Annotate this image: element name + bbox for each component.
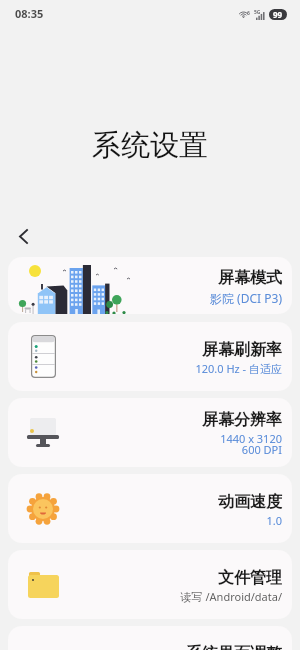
staticText: 动画速度 <box>218 492 282 512</box>
staticText: 屏幕分辨率 <box>202 410 282 430</box>
staticText: 文件管理 <box>218 568 282 588</box>
staticText: 屏幕模式 <box>218 268 282 288</box>
button[interactable]: 屏幕分辨率 <box>8 398 292 467</box>
staticText: 6 <box>247 10 250 17</box>
button[interactable]: Back <box>10 225 36 247</box>
staticText: 系统界面调整 <box>186 644 282 650</box>
button[interactable]: 文件管理 <box>8 550 292 619</box>
staticText: 屏幕刷新率 <box>202 340 282 360</box>
button[interactable]: 屏幕刷新率 <box>8 322 292 391</box>
staticText: 08:35 <box>15 6 44 21</box>
staticText: 5G <box>254 9 261 16</box>
button[interactable]: 屏幕模式 <box>8 257 292 314</box>
staticText: 1440 x 3120 600 DPI <box>220 431 282 458</box>
staticText: 99 <box>273 9 283 20</box>
staticText: 1.0 <box>266 513 282 528</box>
staticText: 影院 (DCI P3) <box>210 290 282 306</box>
staticText: 系统设置 <box>0 127 300 164</box>
staticText: 读写 /Android/data/ <box>180 589 282 604</box>
staticText: 120.0 Hz - 自适应 <box>195 361 282 376</box>
button[interactable]: 系统界面调整 <box>8 626 292 650</box>
button[interactable]: 动画速度 <box>8 474 292 543</box>
